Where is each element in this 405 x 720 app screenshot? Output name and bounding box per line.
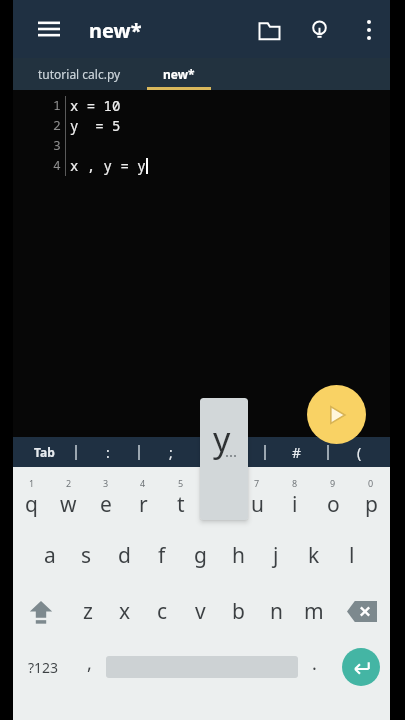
staticText: n (270, 597, 283, 626)
staticText: d (118, 541, 131, 570)
staticText: : (106, 443, 110, 462)
staticText: 1 (29, 477, 35, 489)
staticText: p (365, 490, 378, 519)
button[interactable]: Open folder (251, 12, 287, 48)
button[interactable]: More options (351, 12, 387, 48)
button[interactable]: Run (307, 385, 366, 444)
staticText: 8 (292, 477, 298, 489)
staticText: 2 (66, 477, 72, 489)
button[interactable]: Enter (331, 639, 390, 695)
staticText: 4 (53, 156, 61, 174)
button[interactable]: s (68, 527, 105, 583)
staticText: ; (169, 443, 173, 462)
button[interactable]: j (257, 527, 295, 583)
button[interactable]: n (257, 583, 295, 639)
button[interactable]: x (106, 583, 143, 639)
staticText: y (213, 416, 231, 462)
staticText: m (304, 597, 324, 626)
button[interactable]: Menu (27, 7, 71, 51)
button[interactable]: , (73, 639, 106, 695)
staticText: tutorial calc.py (38, 66, 121, 82)
button[interactable]: ' (203, 437, 264, 467)
button[interactable]: l (333, 527, 371, 583)
staticText: z (83, 597, 93, 626)
staticText: o (327, 490, 340, 519)
button[interactable]: 0 (352, 471, 390, 527)
staticText: ' (232, 443, 236, 462)
staticText: s (81, 541, 92, 570)
button[interactable]: Shift (13, 583, 69, 639)
button[interactable]: . (298, 639, 331, 695)
staticText: u (251, 490, 264, 519)
staticText: w (60, 490, 77, 519)
staticText: c (157, 597, 168, 626)
button[interactable]: ; (140, 437, 201, 467)
staticText: new* (89, 17, 142, 44)
staticText: f (158, 541, 166, 570)
button[interactable]: h (219, 527, 257, 583)
button[interactable]: # (266, 437, 327, 467)
button[interactable]: f (143, 527, 181, 583)
staticText: ?123 (28, 658, 59, 677)
button[interactable]: d (105, 527, 143, 583)
button[interactable]: Hints (301, 12, 337, 48)
button[interactable]: 8 (276, 471, 314, 527)
button[interactable]: 4 (124, 471, 162, 527)
staticText: # (292, 443, 302, 462)
staticText: x (119, 597, 131, 626)
button[interactable]: g (181, 527, 219, 583)
button[interactable]: 2 (50, 471, 87, 527)
staticText: b (232, 597, 245, 626)
staticText: 0 (368, 477, 374, 489)
staticText: 7 (254, 477, 260, 489)
staticText: x , y = y (70, 156, 146, 175)
staticText: . (312, 651, 317, 676)
staticText: 3 (53, 136, 61, 154)
button[interactable]: 7 (238, 471, 276, 527)
button[interactable]: k (295, 527, 333, 583)
staticText: new* (163, 66, 195, 82)
button[interactable]: new* (145, 58, 213, 90)
staticText: v (195, 597, 206, 626)
staticText: 3 (103, 477, 109, 489)
button[interactable]: tutorial calc.py (23, 58, 135, 90)
staticText: y = 5 (70, 116, 121, 135)
staticText: t (177, 490, 185, 519)
button[interactable]: b (219, 583, 257, 639)
staticText: a (44, 541, 56, 570)
button[interactable]: a (31, 527, 68, 583)
button[interactable]: Backspace (333, 583, 390, 639)
staticText: q (25, 490, 38, 519)
staticText: 2 (53, 116, 61, 134)
button[interactable]: v (181, 583, 219, 639)
button[interactable]: 5 (162, 471, 200, 527)
staticText: e (100, 490, 112, 519)
button[interactable]: ?123 (13, 639, 73, 695)
button[interactable]: m (295, 583, 333, 639)
staticText: Tab (34, 444, 55, 460)
button[interactable]: Tab (13, 437, 75, 467)
button[interactable]: c (143, 583, 181, 639)
button[interactable]: 3 (87, 471, 124, 527)
button[interactable]: 6 (200, 471, 238, 527)
staticText: 5 (178, 477, 184, 489)
button[interactable]: 9 (314, 471, 352, 527)
staticText: x = 10 (70, 96, 121, 115)
staticText: 9 (330, 477, 336, 489)
button[interactable]: : (77, 437, 138, 467)
button[interactable]: z (69, 583, 106, 639)
staticText: j (273, 541, 279, 570)
staticText: r (139, 490, 148, 519)
staticText: h (232, 541, 245, 570)
staticText: k (308, 541, 320, 570)
staticText: l (349, 541, 355, 570)
staticText: i (292, 490, 298, 519)
staticText: ( (357, 443, 362, 462)
staticText: , (87, 651, 92, 676)
button[interactable]: ( (329, 437, 390, 467)
button[interactable]: 1 (13, 471, 50, 527)
staticText: 1 (53, 96, 61, 114)
